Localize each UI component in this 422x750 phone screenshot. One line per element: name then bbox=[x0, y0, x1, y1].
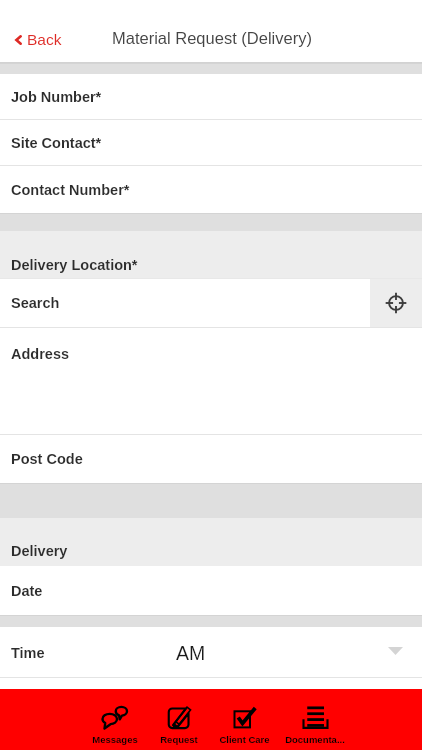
staticText: Address bbox=[11, 346, 70, 362]
button[interactable]: Messages bbox=[82, 689, 147, 750]
button[interactable]: Use my location bbox=[370, 278, 422, 328]
button[interactable]: Client Care bbox=[211, 689, 278, 750]
staticText: AM bbox=[176, 642, 206, 664]
button[interactable]: Documenta... bbox=[278, 689, 352, 750]
button[interactable]: Time bbox=[0, 627, 422, 678]
button[interactable]: Date bbox=[0, 566, 422, 615]
staticText: Delivery bbox=[11, 543, 68, 559]
staticText: Client Care bbox=[219, 734, 270, 745]
staticText: Documenta... bbox=[285, 734, 345, 745]
staticText: Messages bbox=[92, 734, 138, 745]
button[interactable]: Site Contact* bbox=[0, 120, 422, 166]
button[interactable]: Post Code bbox=[0, 435, 422, 483]
button[interactable]: Address bbox=[0, 328, 422, 435]
staticText: Contact Number* bbox=[11, 182, 130, 198]
staticText: Date bbox=[11, 583, 43, 599]
button[interactable]: Contact Number* bbox=[0, 166, 422, 213]
button[interactable]: Job Number* bbox=[0, 74, 422, 120]
staticText: Post Code bbox=[11, 451, 83, 467]
button[interactable]: Delivery bbox=[0, 518, 422, 566]
staticText: Job Number* bbox=[11, 89, 102, 105]
staticText: Site Contact* bbox=[11, 135, 102, 151]
button[interactable]: Request bbox=[147, 689, 211, 750]
staticText: Request bbox=[160, 734, 198, 745]
staticText: Back bbox=[27, 31, 62, 48]
staticText: Material Request (Delivery) bbox=[112, 29, 312, 47]
staticText: Search bbox=[11, 295, 60, 311]
button[interactable]: Delivery Location* bbox=[0, 231, 422, 278]
staticText: Time bbox=[11, 645, 45, 661]
button[interactable]: Back bbox=[15, 31, 62, 48]
staticText: Delivery Location* bbox=[11, 257, 138, 273]
